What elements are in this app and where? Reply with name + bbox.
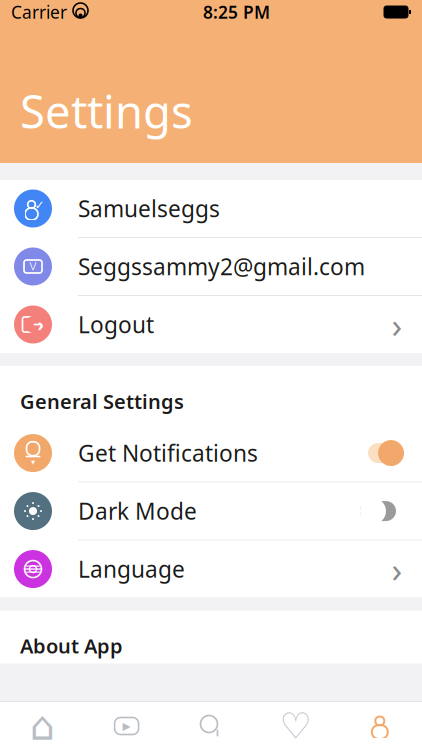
staticText: About App bbox=[20, 633, 123, 659]
button[interactable]: Dark Mode bbox=[0, 483, 422, 541]
staticText: › bbox=[391, 546, 402, 592]
button[interactable]: Profile bbox=[338, 702, 422, 750]
button[interactable]: › bbox=[0, 296, 422, 353]
staticText: › bbox=[37, 313, 43, 336]
staticText: Dark Mode bbox=[78, 496, 197, 526]
button[interactable]: Videos bbox=[84, 702, 169, 750]
staticText: Get Notifications bbox=[78, 438, 258, 468]
button[interactable]: ✓ bbox=[0, 180, 422, 238]
staticText: Logout bbox=[78, 309, 154, 339]
staticText: Language bbox=[78, 554, 185, 584]
staticText: 8:25 PM bbox=[203, 0, 270, 23]
staticText: › bbox=[391, 301, 402, 347]
button[interactable]: Search bbox=[169, 702, 253, 750]
staticText: ♡ bbox=[279, 706, 311, 746]
staticText: ▾ bbox=[31, 457, 35, 466]
button[interactable]: Language bbox=[0, 541, 422, 598]
staticText: General Settings bbox=[20, 388, 184, 415]
button[interactable]: Favorites bbox=[253, 702, 338, 750]
staticText: Samuelseggs bbox=[78, 193, 220, 223]
staticText: ⌂ bbox=[30, 703, 55, 749]
staticText: v bbox=[29, 255, 36, 274]
staticText: ▶ bbox=[123, 720, 131, 732]
staticText: Seggssammy2@gmail.com bbox=[78, 251, 365, 281]
staticText: Carrier bbox=[11, 0, 67, 23]
button[interactable]: Home bbox=[0, 702, 84, 750]
button[interactable]: ▾ bbox=[0, 425, 422, 483]
staticText: Settings bbox=[20, 81, 193, 141]
button[interactable]: v bbox=[0, 238, 422, 296]
staticText: ✓ bbox=[34, 198, 44, 212]
